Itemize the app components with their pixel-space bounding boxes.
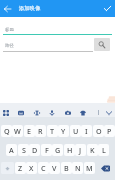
staticText: 标题	[5, 27, 14, 33]
staticText: L	[102, 145, 106, 155]
staticText: A	[9, 145, 14, 155]
staticText: K	[90, 145, 95, 155]
button[interactable]: X	[26, 162, 37, 174]
staticText: O	[96, 126, 102, 136]
staticText: 路径	[5, 43, 14, 49]
staticText: U	[73, 126, 79, 136]
button[interactable]: T	[47, 125, 58, 137]
button[interactable]: Shift	[1, 162, 14, 174]
button[interactable]: Y	[58, 125, 69, 137]
staticText: E	[27, 126, 32, 136]
button[interactable]: Camera	[63, 108, 73, 118]
button[interactable]: S	[18, 144, 29, 156]
button[interactable]: L	[98, 144, 109, 156]
staticText: C	[41, 163, 46, 173]
button[interactable]: Voice input	[47, 108, 57, 118]
button[interactable]: Save	[100, 0, 115, 17]
button[interactable]: O	[93, 125, 104, 137]
button[interactable]: J	[75, 144, 86, 156]
staticText: R	[38, 126, 43, 136]
button[interactable]: H	[64, 144, 75, 156]
button[interactable]: C	[38, 162, 49, 174]
button[interactable]: N	[72, 162, 83, 174]
button[interactable]: Z	[15, 162, 26, 174]
staticText: G	[55, 145, 61, 155]
button[interactable]: V	[49, 162, 60, 174]
staticText: Z	[18, 163, 23, 173]
staticText: Q	[4, 126, 10, 136]
staticText: H	[67, 145, 73, 155]
staticText: N	[75, 163, 81, 173]
button[interactable]: I	[81, 125, 92, 137]
button[interactable]: Settings	[32, 108, 42, 118]
button[interactable]: Emoji	[16, 108, 26, 118]
staticText: I	[85, 126, 88, 136]
staticText: B	[64, 163, 69, 173]
button[interactable]: Back	[0, 0, 14, 17]
button[interactable]: G	[52, 144, 63, 156]
staticText: 添加映像	[19, 5, 41, 12]
button[interactable]: W	[12, 125, 23, 137]
button[interactable]: K	[87, 144, 98, 156]
staticText: F	[45, 145, 49, 155]
button[interactable]: U	[70, 125, 81, 137]
button[interactable]: B	[61, 162, 72, 174]
staticText: M	[86, 163, 93, 173]
button[interactable]: Q	[1, 125, 12, 137]
staticText: P	[107, 126, 112, 136]
button[interactable]: Hide keyboard	[104, 108, 114, 118]
staticText: S	[22, 145, 26, 155]
staticText: Y	[61, 126, 66, 136]
button[interactable]: Apps	[1, 108, 11, 118]
staticText: D	[32, 145, 38, 155]
button[interactable]: Browse	[94, 38, 110, 51]
button[interactable]: E	[24, 125, 35, 137]
button[interactable]: M	[84, 162, 95, 174]
button[interactable]: D	[29, 144, 40, 156]
button[interactable]: Backspace	[97, 162, 114, 174]
button[interactable]: R	[35, 125, 46, 137]
staticText: W	[14, 126, 21, 136]
staticText: T	[50, 126, 55, 136]
button[interactable]: Themes	[78, 108, 88, 118]
button[interactable]: F	[41, 144, 52, 156]
staticText: J	[79, 145, 82, 155]
button[interactable]: A	[6, 144, 17, 156]
staticText: X	[29, 163, 34, 173]
button[interactable]: P	[104, 125, 115, 137]
staticText: V	[52, 163, 57, 173]
